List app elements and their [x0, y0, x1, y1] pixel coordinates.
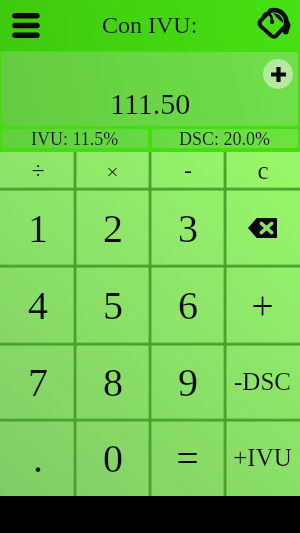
button[interactable]: .	[0, 420, 75, 496]
staticText: IVU: 11.5%	[31, 129, 119, 148]
button[interactable]: 7	[0, 344, 75, 420]
staticText: 5	[103, 283, 123, 327]
button[interactable]: c	[225, 152, 300, 189]
staticText: c	[257, 157, 269, 185]
button[interactable]: 6	[150, 266, 225, 344]
button[interactable]: 5	[75, 266, 150, 344]
button[interactable]: 2	[75, 189, 150, 266]
button[interactable]: Add	[263, 59, 293, 89]
button[interactable]: 111.50	[2, 52, 298, 126]
staticText: -DSC	[234, 368, 291, 396]
staticText: 3	[178, 206, 198, 250]
button[interactable]: ÷	[0, 152, 75, 189]
button[interactable]: 3	[150, 189, 225, 266]
staticText: 6	[178, 283, 198, 327]
staticText: 2	[103, 206, 123, 250]
button[interactable]: -	[150, 152, 225, 189]
staticText: -	[184, 157, 192, 184]
staticText: 8	[103, 360, 123, 404]
button[interactable]: Backspace	[225, 189, 300, 266]
button[interactable]: IVU: 11.5%	[2, 129, 148, 148]
staticText: DSC: 20.0%	[179, 129, 271, 148]
staticText: +IVU	[233, 444, 292, 472]
staticText: 1	[28, 206, 48, 250]
button[interactable]: Menu	[3, 0, 49, 51]
button[interactable]: 9	[150, 344, 225, 420]
staticText: ÷	[31, 157, 45, 184]
staticText: .	[33, 436, 43, 480]
staticText: 4	[28, 283, 48, 327]
staticText: 111.50	[110, 87, 191, 120]
button[interactable]: 1	[0, 189, 75, 266]
button[interactable]: -DSC	[225, 344, 300, 420]
button[interactable]: Change color	[253, 1, 297, 45]
button[interactable]: =	[150, 420, 225, 496]
button[interactable]: +	[225, 266, 300, 344]
button[interactable]: 8	[75, 344, 150, 420]
staticText: 0	[103, 436, 123, 480]
staticText: ×	[106, 159, 119, 183]
staticText: Con IVU:	[102, 12, 198, 39]
button[interactable]: ×	[75, 152, 150, 189]
button[interactable]: 0	[75, 420, 150, 496]
staticText: +	[251, 283, 274, 327]
staticText: 9	[178, 360, 198, 404]
staticText: =	[176, 436, 199, 480]
button[interactable]: DSC: 20.0%	[152, 129, 298, 148]
staticText: 7	[28, 360, 48, 404]
button[interactable]: +IVU	[225, 420, 300, 496]
button[interactable]: 4	[0, 266, 75, 344]
